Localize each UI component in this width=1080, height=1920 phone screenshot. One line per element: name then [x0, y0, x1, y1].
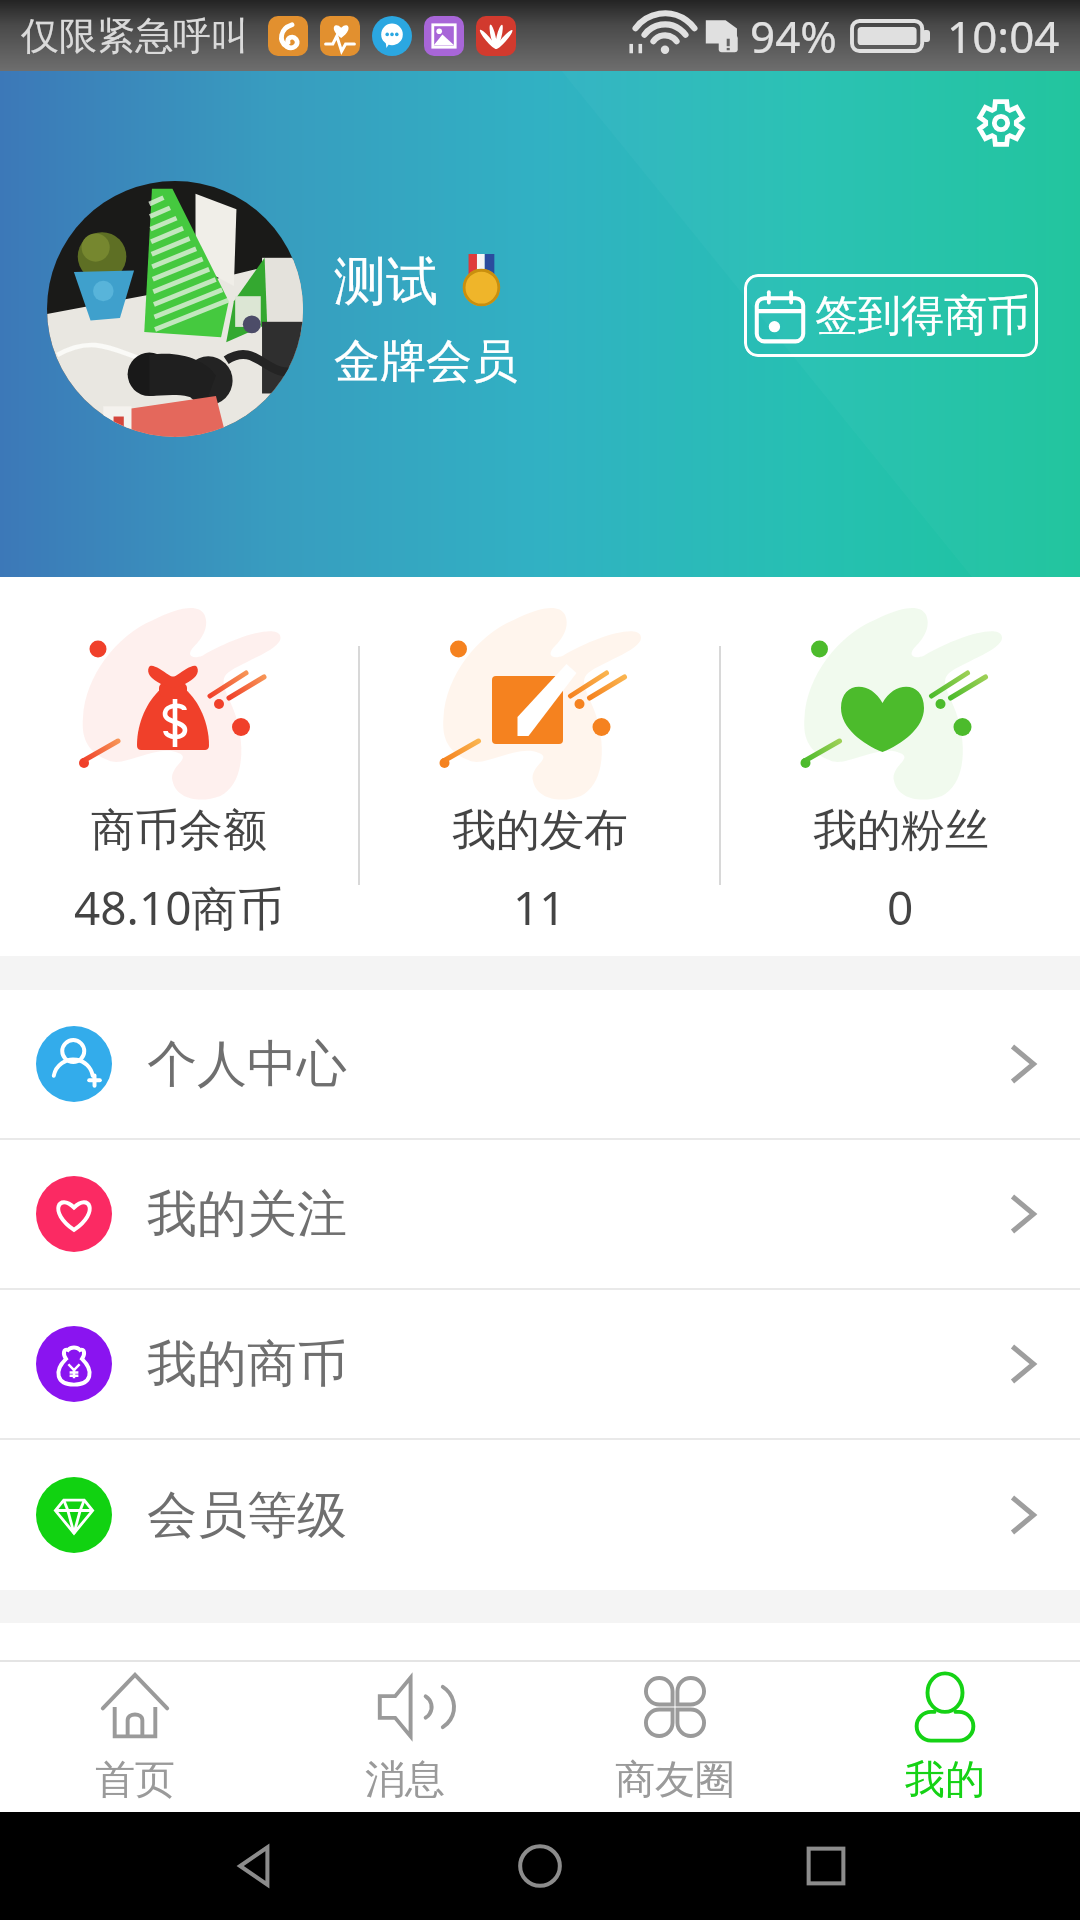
- staticText: 我的粉丝: [813, 803, 989, 858]
- staticText: 签到得商币: [815, 289, 1030, 343]
- staticText: 我的发布: [452, 803, 628, 858]
- button[interactable]: Recents: [795, 1835, 857, 1897]
- button[interactable]: 我的商币: [0, 1290, 1080, 1438]
- staticText: 94%: [750, 6, 837, 66]
- button[interactable]: 签到得商币: [744, 274, 1038, 357]
- staticText: 0: [887, 876, 914, 939]
- button[interactable]: Avatar: [47, 181, 303, 437]
- staticText: 10:04: [947, 6, 1060, 66]
- button[interactable]: 商币余额: [0, 577, 358, 956]
- button[interactable]: Home: [509, 1835, 571, 1897]
- button[interactable]: 会员等级: [0, 1440, 1080, 1590]
- staticText: 会员等级: [147, 1484, 347, 1547]
- button[interactable]: 我的关注: [0, 1140, 1080, 1288]
- button[interactable]: 我的: [810, 1662, 1080, 1812]
- button[interactable]: 商友圈: [540, 1662, 810, 1812]
- staticText: 测试: [334, 249, 438, 315]
- staticText: 商币余额: [91, 803, 267, 858]
- staticText: 我的: [905, 1754, 985, 1804]
- staticText: 个人中心: [147, 1033, 347, 1096]
- staticText: 我的商币: [147, 1333, 347, 1396]
- staticText: 首页: [95, 1754, 175, 1804]
- button[interactable]: Back: [224, 1835, 286, 1897]
- button[interactable]: 首页: [0, 1662, 270, 1812]
- staticText: 仅限紧急呼叫: [21, 12, 249, 60]
- staticText: 11: [513, 876, 566, 939]
- button[interactable]: Settings: [959, 81, 1043, 165]
- staticText: 我的关注: [147, 1183, 347, 1246]
- staticText: 金牌会员: [334, 333, 518, 391]
- staticText: 商友圈: [615, 1754, 735, 1804]
- staticText: 消息: [365, 1754, 445, 1804]
- button[interactable]: 我的粉丝: [721, 577, 1080, 956]
- button[interactable]: 个人中心: [0, 990, 1080, 1138]
- button[interactable]: 我的发布: [360, 577, 719, 956]
- staticText: 48.10商币: [74, 876, 284, 939]
- button[interactable]: 消息: [270, 1662, 540, 1812]
